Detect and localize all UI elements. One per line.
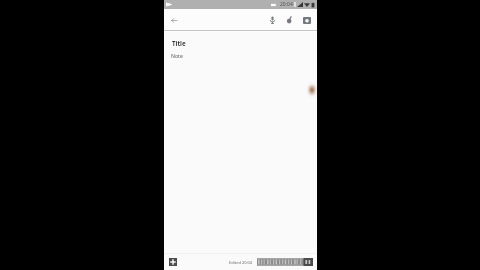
staticText: 20:04 bbox=[280, 1, 293, 8]
staticText: Edited 20:04 bbox=[229, 260, 253, 265]
staticText: Note bbox=[171, 52, 183, 59]
button[interactable]: Add image bbox=[299, 12, 315, 28]
button[interactable]: Add bbox=[167, 256, 179, 268]
staticText: Title bbox=[172, 39, 186, 47]
button[interactable]: Drawing bbox=[281, 12, 297, 28]
button[interactable]: Back bbox=[166, 12, 182, 28]
button[interactable]: Voice recording bbox=[264, 12, 280, 28]
